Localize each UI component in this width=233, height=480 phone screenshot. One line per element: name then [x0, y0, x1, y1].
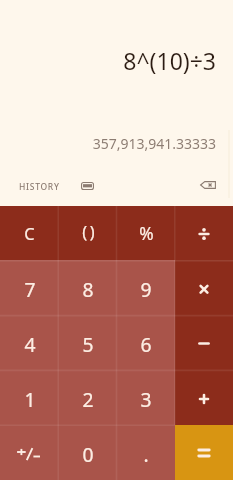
staticText: HISTORY	[19, 181, 60, 193]
button[interactable]: Divide	[175, 206, 233, 260]
staticText: 9	[140, 276, 152, 302]
button[interactable]: 2	[59, 370, 117, 425]
staticText: %	[139, 222, 154, 246]
button[interactable]: 6	[117, 315, 175, 370]
staticText: .	[143, 441, 149, 467]
button[interactable]: Multiply	[175, 260, 233, 315]
button[interactable]: Parentheses	[59, 206, 117, 260]
staticText: 8^(10)÷3	[123, 45, 216, 76]
button[interactable]: Percent	[117, 206, 175, 260]
button[interactable]: HISTORY	[18, 177, 61, 197]
staticText: C	[24, 223, 35, 245]
button[interactable]: 8	[59, 260, 117, 315]
button[interactable]: Toggle sign	[0, 425, 59, 480]
staticText: 357,913,941.33333	[92, 134, 216, 153]
button[interactable]: 3	[117, 370, 175, 425]
button[interactable]: Backspace	[197, 177, 219, 193]
staticText: 5	[82, 331, 94, 357]
staticText: 8	[82, 276, 94, 302]
button[interactable]: Decimal point	[117, 425, 175, 480]
button[interactable]: 9	[117, 260, 175, 315]
button[interactable]: Subtract	[175, 315, 233, 370]
staticText: ( )	[82, 221, 95, 243]
staticText: 4	[24, 331, 36, 357]
button[interactable]: 5	[59, 315, 117, 370]
button[interactable]: 1	[0, 370, 59, 425]
button[interactable]: Add	[175, 370, 233, 425]
staticText: 1	[24, 386, 36, 412]
staticText: 7	[24, 276, 36, 302]
button[interactable]: 7	[0, 260, 59, 315]
staticText: 6	[140, 331, 152, 357]
button[interactable]: 4	[0, 315, 59, 370]
button[interactable]: 0	[59, 425, 117, 480]
staticText: 0	[82, 441, 94, 467]
button[interactable]: Equals	[175, 425, 233, 480]
staticText: 2	[82, 386, 94, 412]
button[interactable]: C	[0, 206, 59, 260]
staticText: 3	[140, 386, 152, 412]
button[interactable]: Keypad layout	[78, 178, 96, 194]
